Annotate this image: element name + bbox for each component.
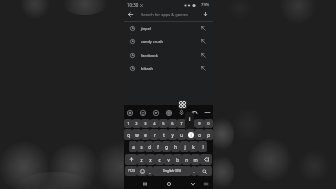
- button[interactable]: Toolbar item: [126, 109, 133, 116]
- button[interactable]: Downloads: [201, 10, 210, 19]
- button[interactable]: e: [141, 129, 150, 140]
- button[interactable]: Toolbar item: [165, 109, 172, 116]
- button[interactable]: 5: [159, 119, 168, 128]
- button[interactable]: .: [191, 166, 197, 176]
- staticText: n: [185, 157, 188, 163]
- button[interactable]: 2: [132, 119, 141, 128]
- button[interactable]: y: [168, 129, 177, 140]
- button[interactable]: Backspace: [200, 154, 212, 165]
- staticText: o: [198, 132, 201, 138]
- button[interactable]: Toolbar item: [139, 109, 146, 116]
- staticText: candy crush: [141, 39, 163, 44]
- button[interactable]: facebook: [124, 49, 213, 62]
- button[interactable]: 7: [177, 119, 186, 128]
- staticText: m: [193, 157, 198, 163]
- button[interactable]: English (US): [153, 166, 191, 176]
- button[interactable]: a: [129, 141, 137, 152]
- button[interactable]: b: [173, 154, 182, 165]
- staticText: l: [202, 144, 204, 150]
- staticText: u: [180, 132, 183, 138]
- button[interactable]: Recents: [140, 179, 149, 189]
- button[interactable]: 6: [168, 119, 177, 128]
- button[interactable]: Home: [164, 179, 173, 189]
- staticText: 5: [162, 121, 165, 126]
- staticText: r: [154, 132, 156, 138]
- staticText: j: [184, 144, 186, 150]
- button[interactable]: f: [153, 141, 162, 152]
- button[interactable]: l: [198, 141, 207, 152]
- button[interactable]: g: [162, 141, 171, 152]
- staticText: 4: [153, 121, 156, 126]
- button[interactable]: c: [155, 154, 164, 165]
- staticText: 10:30: [127, 2, 139, 8]
- button[interactable]: 0: [204, 119, 213, 128]
- button[interactable]: Back: [126, 10, 135, 19]
- staticText: i: [189, 115, 191, 123]
- staticText: v: [167, 157, 170, 163]
- staticText: e: [144, 132, 147, 138]
- staticText: b: [176, 157, 179, 163]
- button[interactable]: Voice input: [178, 109, 185, 116]
- button[interactable]: z: [137, 154, 146, 165]
- staticText: a: [132, 144, 135, 150]
- staticText: p: [207, 132, 210, 138]
- button[interactable]: Shift: [125, 154, 137, 165]
- button[interactable]: 8: [186, 119, 195, 128]
- button[interactable]: v: [164, 154, 173, 165]
- button[interactable]: Toolbar item: [152, 109, 159, 116]
- staticText: 0: [207, 121, 210, 126]
- staticText: facebook: [141, 53, 158, 58]
- staticText: q: [127, 132, 130, 138]
- button[interactable]: p: [204, 129, 213, 140]
- staticText: English (US): [163, 169, 181, 173]
- button[interactable]: j: [180, 141, 189, 152]
- staticText: jiopel: [141, 26, 151, 31]
- button[interactable]: x: [146, 154, 155, 165]
- button[interactable]: Undo: [191, 109, 198, 116]
- staticText: 1: [127, 121, 130, 126]
- button[interactable]: 9: [195, 119, 204, 128]
- button[interactable]: Show toolbar: [178, 100, 187, 109]
- staticText: .: [193, 169, 195, 174]
- button[interactable]: o: [195, 129, 204, 140]
- staticText: z: [140, 157, 143, 163]
- staticText: f: [157, 144, 159, 150]
- button[interactable]: w: [132, 129, 141, 140]
- button[interactable]: 4: [150, 119, 159, 128]
- staticText: c: [158, 157, 161, 163]
- staticText: bikash: [141, 66, 153, 71]
- staticText: i: [190, 132, 192, 138]
- button[interactable]: i: [186, 129, 195, 140]
- staticText: 6: [171, 121, 174, 126]
- button[interactable]: bikash: [124, 62, 213, 75]
- button[interactable]: Hide keyboard: [188, 179, 197, 189]
- button[interactable]: ,: [147, 166, 153, 176]
- button[interactable]: candy crush: [124, 35, 213, 48]
- button[interactable]: 3: [141, 119, 150, 128]
- staticText: d: [148, 144, 151, 150]
- button[interactable]: Emoji: [137, 166, 147, 176]
- button[interactable]: q: [124, 129, 132, 140]
- button[interactable]: n: [182, 154, 191, 165]
- button[interactable]: h: [171, 141, 180, 152]
- button[interactable]: More options: [204, 109, 211, 116]
- button[interactable]: u: [177, 129, 186, 140]
- staticText: 2: [135, 121, 138, 126]
- staticText: x: [149, 157, 152, 163]
- button[interactable]: k: [189, 141, 198, 152]
- staticText: 79%: [201, 2, 210, 8]
- button[interactable]: Search: [197, 166, 212, 176]
- staticText: w: [135, 132, 139, 138]
- button[interactable]: r: [150, 129, 159, 140]
- button[interactable]: s: [137, 141, 145, 152]
- button[interactable]: Switch keyboard: [201, 179, 210, 189]
- button[interactable]: t: [159, 129, 168, 140]
- button[interactable]: 1: [124, 119, 132, 128]
- button[interactable]: jiopel: [124, 22, 213, 35]
- staticText: Search for apps & games: [141, 12, 188, 17]
- button[interactable]: m: [191, 154, 200, 165]
- button[interactable]: ?123: [125, 166, 137, 176]
- staticText: s: [140, 144, 143, 150]
- button[interactable]: d: [145, 141, 153, 152]
